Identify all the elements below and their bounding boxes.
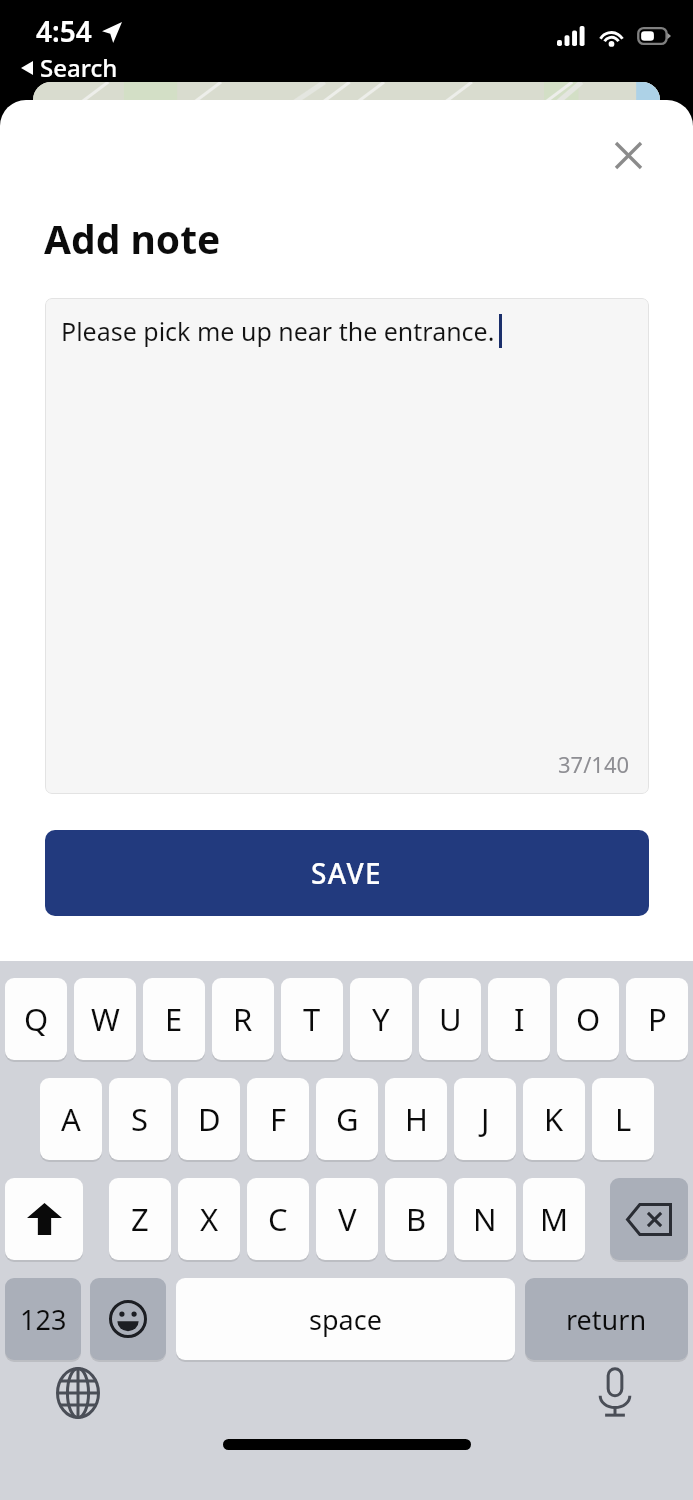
staticText: K bbox=[544, 1098, 564, 1140]
button[interactable]: Change keyboard bbox=[46, 1361, 110, 1425]
staticText: 123 bbox=[20, 1301, 67, 1338]
button[interactable]: V bbox=[316, 1178, 378, 1260]
button[interactable]: Emoji bbox=[90, 1278, 166, 1360]
button[interactable]: return bbox=[525, 1278, 688, 1360]
button[interactable]: SAVE bbox=[45, 830, 649, 916]
button[interactable]: T bbox=[281, 978, 343, 1060]
staticText: return bbox=[566, 1301, 647, 1338]
staticText: N bbox=[473, 1198, 497, 1240]
button[interactable]: Q bbox=[5, 978, 67, 1060]
staticText: R bbox=[233, 998, 253, 1040]
staticText: V bbox=[338, 1198, 357, 1240]
staticText: X bbox=[200, 1198, 219, 1240]
button[interactable]: E bbox=[143, 978, 205, 1060]
staticText: E bbox=[165, 998, 183, 1040]
button[interactable]: M bbox=[523, 1178, 585, 1260]
button[interactable]: Dictate bbox=[583, 1361, 647, 1425]
button[interactable]: L bbox=[592, 1078, 654, 1160]
button[interactable]: I bbox=[488, 978, 550, 1060]
staticText: SAVE bbox=[311, 854, 383, 892]
staticText: I bbox=[514, 998, 525, 1040]
staticText: 4:54 bbox=[36, 12, 92, 50]
staticText: P bbox=[648, 998, 667, 1040]
button[interactable]: O bbox=[557, 978, 619, 1060]
staticText: Search bbox=[40, 51, 118, 84]
staticText: M bbox=[540, 1198, 569, 1240]
staticText: space bbox=[309, 1301, 382, 1338]
staticText: U bbox=[439, 998, 462, 1040]
staticText: D bbox=[198, 1098, 221, 1140]
staticText: T bbox=[303, 998, 321, 1040]
button[interactable]: H bbox=[385, 1078, 447, 1160]
button[interactable]: Close bbox=[600, 127, 656, 183]
button[interactable]: Backspace bbox=[610, 1178, 688, 1260]
button[interactable]: J bbox=[454, 1078, 516, 1160]
staticText: C bbox=[268, 1198, 288, 1240]
button[interactable]: 123 bbox=[5, 1278, 81, 1360]
staticText: L bbox=[615, 1098, 632, 1140]
button[interactable]: B bbox=[385, 1178, 447, 1260]
staticText: Y bbox=[372, 998, 390, 1040]
staticText: G bbox=[336, 1098, 359, 1140]
staticText: S bbox=[131, 1098, 149, 1140]
button[interactable]: X bbox=[178, 1178, 240, 1260]
staticText: A bbox=[61, 1098, 81, 1140]
button[interactable]: S bbox=[109, 1078, 171, 1160]
button[interactable]: D bbox=[178, 1078, 240, 1160]
staticText: F bbox=[270, 1098, 287, 1140]
button[interactable]: N bbox=[454, 1178, 516, 1260]
staticText: W bbox=[91, 998, 120, 1040]
staticText: Please pick me up near the entrance. bbox=[61, 314, 495, 348]
staticText: Q bbox=[24, 998, 49, 1040]
staticText: Add note bbox=[44, 212, 221, 265]
staticText: 37/140 bbox=[558, 749, 630, 779]
button[interactable]: U bbox=[419, 978, 481, 1060]
staticText: J bbox=[481, 1098, 490, 1140]
button[interactable]: R bbox=[212, 978, 274, 1060]
staticText: B bbox=[406, 1198, 427, 1240]
button[interactable]: F bbox=[247, 1078, 309, 1160]
button[interactable]: space bbox=[176, 1278, 515, 1360]
button[interactable]: P bbox=[626, 978, 688, 1060]
staticText: O bbox=[576, 998, 601, 1040]
button[interactable]: Please pick me up near the entrance. bbox=[45, 298, 649, 794]
button[interactable]: Y bbox=[350, 978, 412, 1060]
button[interactable]: C bbox=[247, 1178, 309, 1260]
button[interactable]: W bbox=[74, 978, 136, 1060]
button[interactable]: K bbox=[523, 1078, 585, 1160]
staticText: H bbox=[405, 1098, 428, 1140]
staticText: Z bbox=[131, 1198, 149, 1240]
button[interactable]: Shift bbox=[5, 1178, 83, 1260]
button[interactable]: Z bbox=[109, 1178, 171, 1260]
button[interactable]: G bbox=[316, 1078, 378, 1160]
button[interactable]: A bbox=[40, 1078, 102, 1160]
